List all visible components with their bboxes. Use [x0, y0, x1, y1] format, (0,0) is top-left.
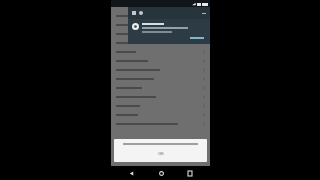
other: Status icon [139, 11, 143, 15]
button[interactable]: Back [121, 166, 141, 180]
other: App icon [132, 23, 139, 30]
button[interactable] [111, 38, 210, 47]
button[interactable] [111, 119, 210, 128]
button[interactable] [111, 101, 210, 110]
button[interactable] [111, 47, 210, 56]
button[interactable]: Recent apps [180, 166, 200, 180]
button[interactable]: OK [154, 150, 168, 157]
button[interactable]: App icon [128, 19, 210, 33]
button[interactable] [188, 36, 206, 40]
button[interactable] [111, 74, 210, 83]
button[interactable] [111, 11, 210, 20]
button[interactable] [111, 29, 210, 38]
button[interactable] [111, 65, 210, 74]
staticText: OK [158, 151, 164, 156]
button[interactable]: Home [151, 166, 171, 180]
button[interactable] [111, 110, 210, 119]
button[interactable] [111, 92, 210, 101]
button[interactable] [111, 83, 210, 92]
button[interactable] [111, 20, 210, 29]
button[interactable] [111, 56, 210, 65]
